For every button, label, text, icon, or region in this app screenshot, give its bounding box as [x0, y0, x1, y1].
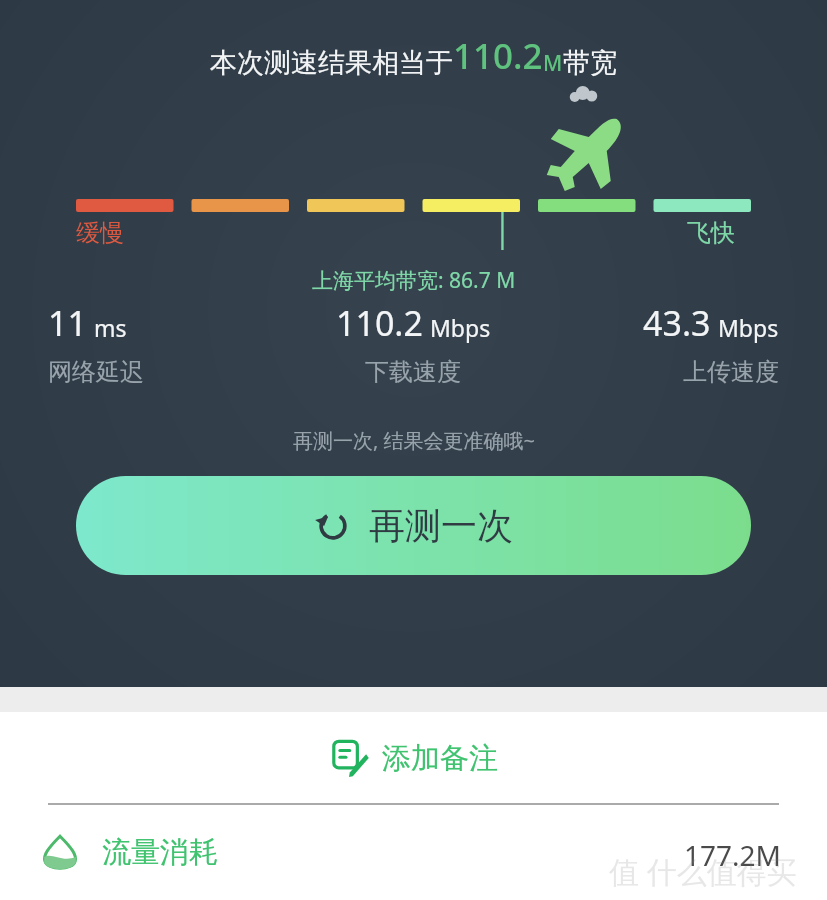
staticText: Mbps [430, 312, 491, 343]
staticText: 11 [48, 300, 87, 346]
staticText: 下载速度 [365, 357, 461, 387]
staticText: 再测一次 [369, 503, 513, 548]
staticText: 43.3 [643, 300, 711, 346]
staticText: ms [94, 312, 127, 343]
button[interactable]: Add note [0, 712, 827, 803]
other: Add note [330, 739, 368, 777]
staticText: 再测一次, 结果会更准确哦~ [293, 427, 535, 454]
staticText: 本次测速结果相当于 [210, 46, 453, 80]
staticText: 值 什么值得买 [609, 851, 797, 892]
staticText: 网络延迟 [48, 357, 144, 387]
staticText: 110.2 [336, 300, 423, 346]
staticText: 缓慢 [76, 218, 124, 248]
staticText: 110.2 [453, 32, 543, 80]
staticText: M [543, 49, 563, 78]
staticText: 飞快 [687, 218, 735, 248]
staticText: 带宽 [563, 46, 617, 80]
button[interactable]: 再测一次 [76, 476, 751, 575]
staticText: 添加备注 [382, 740, 498, 777]
staticText: 流量消耗 [102, 834, 218, 871]
staticText: 177.2M [684, 836, 781, 874]
staticText: 上海平均带宽: 86.7 M [312, 266, 516, 295]
staticText: Mbps [718, 312, 779, 343]
button[interactable]: 流量消耗 [40, 805, 781, 900]
staticText: 上传速度 [683, 357, 779, 387]
